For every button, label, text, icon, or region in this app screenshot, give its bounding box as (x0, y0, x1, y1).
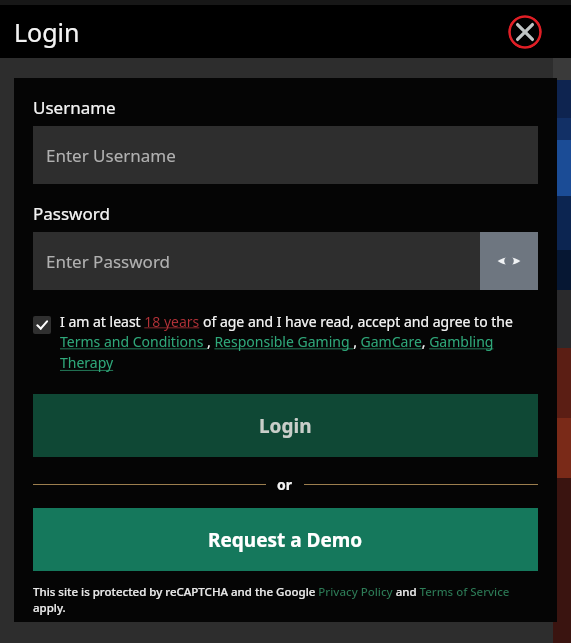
button[interactable]: Login (33, 394, 538, 457)
button[interactable]: Age and terms checkbox (33, 316, 51, 334)
staticText: or (277, 475, 293, 494)
button[interactable]: This site is protected by reCAPTCHA and … (33, 584, 538, 616)
staticText: Username (33, 96, 116, 119)
staticText: Request a Demo (208, 527, 363, 553)
staticText: Enter Password (46, 250, 171, 273)
staticText: Password (33, 202, 110, 225)
staticText: Login (14, 15, 80, 49)
button[interactable]: Show password (480, 232, 538, 290)
staticText: Enter Username (46, 144, 176, 167)
button[interactable]: Close (508, 15, 542, 49)
staticText: Login (259, 413, 312, 439)
button[interactable]: Enter Password (33, 232, 480, 290)
button[interactable]: I am at least 18 years of age and I have… (60, 312, 538, 373)
button[interactable]: Request a Demo (33, 508, 538, 571)
button[interactable]: Enter Username (33, 126, 538, 184)
